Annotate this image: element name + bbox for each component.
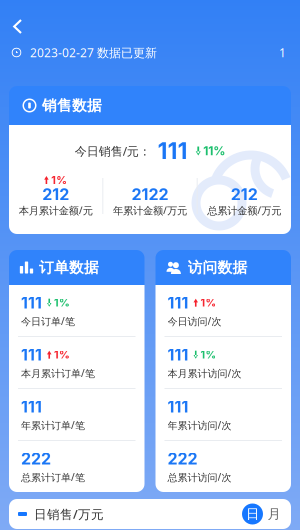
staticText: 访问数据 <box>187 258 247 277</box>
button[interactable]: 日 <box>242 503 263 524</box>
staticText: 222 <box>21 449 51 468</box>
staticText: 订单数据 <box>39 258 99 277</box>
staticText: 年累计金额/万元 <box>113 203 187 217</box>
staticText: 日销售/万元 <box>34 505 104 523</box>
staticText: 1% <box>51 173 67 186</box>
staticText: 2023-02-27 数据已更新 <box>30 44 157 61</box>
staticText: 11% <box>203 144 225 158</box>
staticText: 111 <box>167 293 188 312</box>
staticText: 111 <box>21 397 42 416</box>
staticText: 销售数据 <box>42 96 102 115</box>
staticText: 1 <box>279 44 286 61</box>
staticText: 1% <box>200 296 216 309</box>
staticText: 212 <box>42 185 69 204</box>
button[interactable]: 月 <box>263 503 285 524</box>
staticText: 1% <box>54 296 70 309</box>
staticText: 212 <box>231 185 258 204</box>
staticText: 今日访问/次 <box>167 314 221 328</box>
staticText: 今日订单/笔 <box>21 314 75 328</box>
staticText: 222 <box>167 449 197 468</box>
staticText: 年累计订单/笔 <box>21 418 85 432</box>
staticText: 111 <box>167 397 188 416</box>
staticText: 1% <box>200 348 216 361</box>
staticText: 1% <box>54 348 70 361</box>
staticText: 本月累计访问/次 <box>167 366 241 380</box>
staticText: 2122 <box>131 185 168 204</box>
staticText: 111 <box>21 345 42 364</box>
staticText: 今日销售/元： <box>75 143 151 159</box>
staticText: 本月累计订单/笔 <box>21 366 95 380</box>
staticText: 总累计金额/万元 <box>207 203 281 217</box>
staticText: 本月累计金额/元 <box>19 203 93 217</box>
staticText: 111 <box>158 137 188 165</box>
staticText: 月 <box>267 506 280 522</box>
staticText: 年累计访问/次 <box>167 418 231 432</box>
staticText: 111 <box>167 345 188 364</box>
staticText: 111 <box>21 293 42 312</box>
staticText: 总累计访问/次 <box>167 470 231 484</box>
staticText: 总累计订单/笔 <box>21 470 85 484</box>
button[interactable]: Back <box>0 10 36 43</box>
staticText: 日 <box>246 506 259 522</box>
